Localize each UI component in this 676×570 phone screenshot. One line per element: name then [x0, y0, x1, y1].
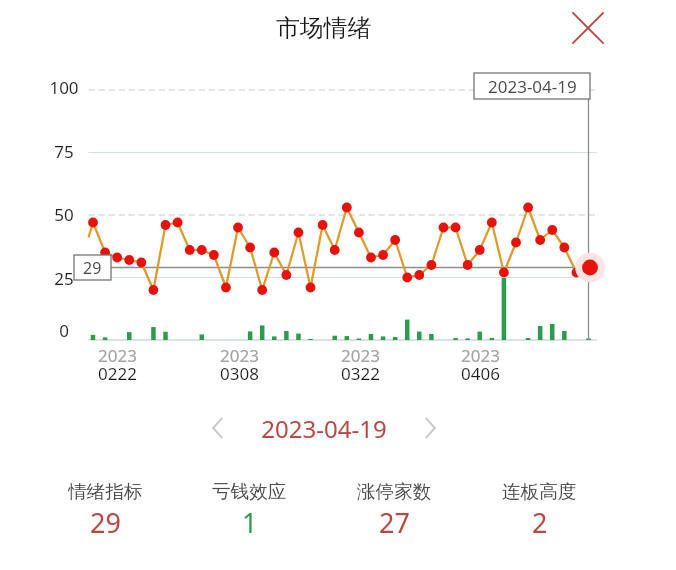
staticText: 2023 [220, 344, 259, 367]
button[interactable]: Close [566, 6, 610, 50]
staticText: 0222 [98, 362, 137, 385]
staticText: 27 [379, 504, 410, 541]
staticText: 2023 [98, 344, 137, 367]
staticText: 市场情绪 [276, 13, 372, 43]
staticText: 2023-04-19 [261, 412, 387, 445]
staticText: 50 [54, 203, 74, 226]
staticText: 0 [59, 319, 69, 342]
button[interactable]: Next day [408, 406, 452, 450]
button[interactable]: Previous day [196, 406, 240, 450]
staticText: 涨停家数 [357, 480, 432, 503]
staticText: 2 [532, 504, 548, 541]
staticText: 亏钱效应 [212, 480, 287, 503]
button[interactable]: 市场情绪 [276, 13, 372, 43]
staticText: 1 [242, 504, 258, 541]
staticText: 100 [49, 76, 79, 99]
staticText: 25 [54, 267, 74, 290]
staticText: 0308 [220, 362, 259, 385]
button[interactable]: 涨停家数 [322, 480, 467, 541]
staticText: 2023-04-19 [488, 75, 577, 98]
staticText: 0406 [461, 362, 500, 385]
button[interactable]: 亏钱效应 [177, 480, 322, 541]
staticText: 2023 [341, 344, 380, 367]
button[interactable]: 2023-04-19 [244, 406, 404, 450]
staticText: 29 [83, 257, 102, 279]
button[interactable]: 连板高度 [467, 480, 612, 541]
staticText: 75 [54, 140, 74, 163]
staticText: 情绪指标 [68, 480, 143, 503]
staticText: 2023 [461, 344, 500, 367]
staticText: 0322 [341, 362, 380, 385]
button[interactable]: 情绪指标 [33, 480, 177, 541]
staticText: 29 [90, 504, 121, 541]
staticText: 连板高度 [502, 480, 577, 503]
